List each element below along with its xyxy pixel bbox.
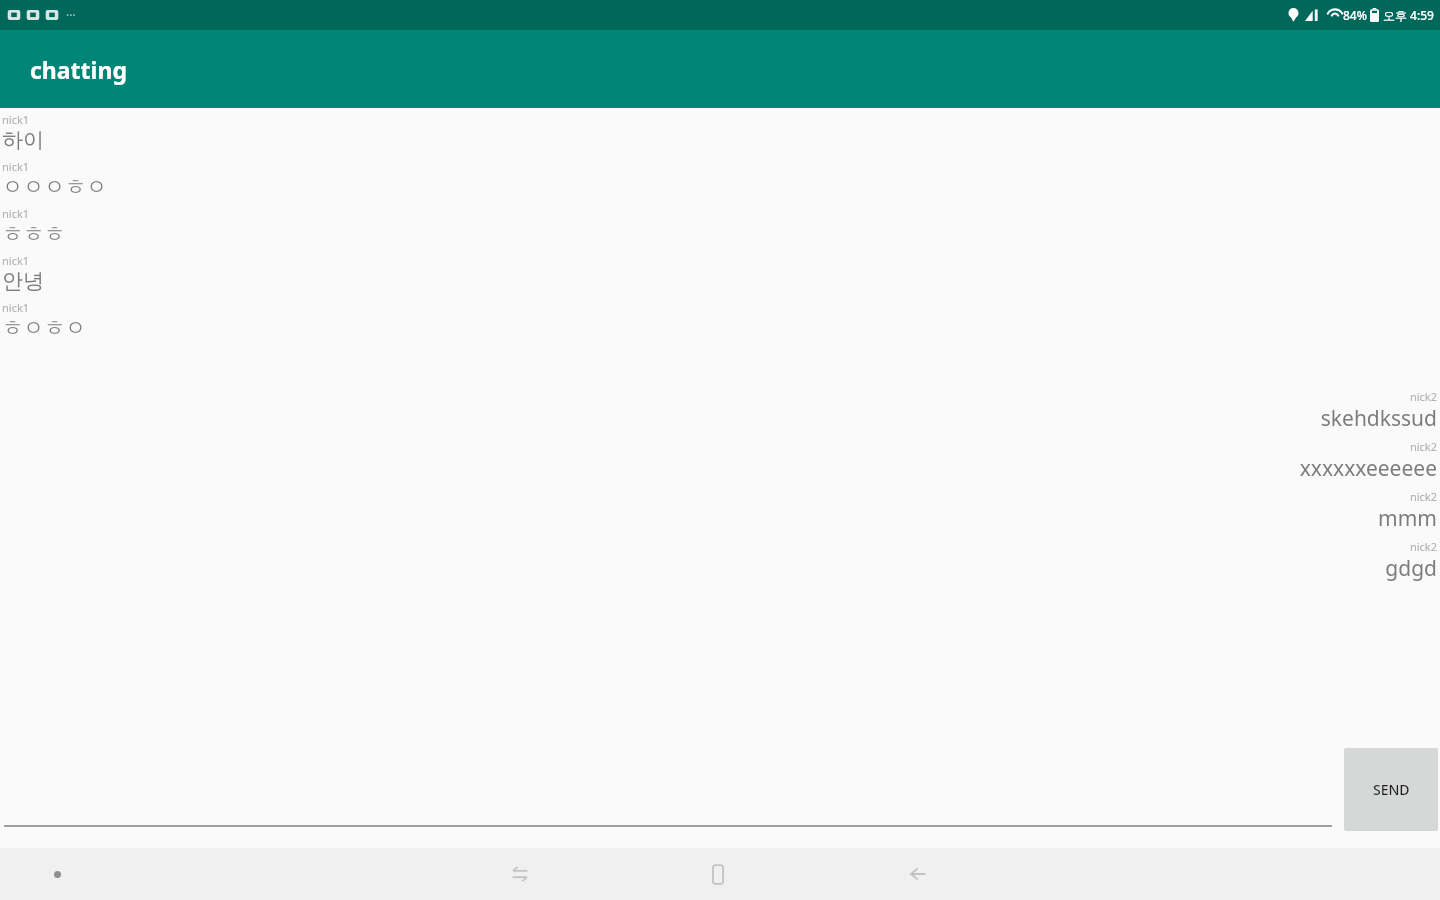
button[interactable]: ㅎㅎㅎ	[0, 221, 1440, 247]
button[interactable]: Home	[692, 848, 744, 900]
button[interactable]: mmm	[0, 504, 1440, 533]
button[interactable]: ㅎㅇㅎㅇ	[0, 315, 1440, 341]
staticText: 84%	[1343, 7, 1367, 23]
staticText: 오후 4:59	[1383, 7, 1434, 23]
staticText: ···	[66, 7, 76, 23]
button[interactable]: nick1	[0, 112, 1440, 127]
button[interactable]: 안녕	[0, 268, 1440, 294]
button[interactable]: nick2	[0, 439, 1440, 454]
button[interactable]: ㅇㅇㅇㅎㅇ	[0, 174, 1440, 200]
button[interactable]: skehdkssud	[0, 404, 1440, 433]
button[interactable]: gdgd	[0, 554, 1440, 583]
staticText: SEND	[1373, 780, 1410, 799]
button[interactable]: 하이	[0, 127, 1440, 153]
button[interactable]: nick1	[0, 300, 1440, 315]
button[interactable]: Recents	[494, 848, 546, 900]
button[interactable]: Back	[891, 848, 943, 900]
button[interactable]: Keyboard	[31, 848, 83, 900]
button[interactable]: nick1	[0, 253, 1440, 268]
button[interactable]: nick1	[0, 206, 1440, 221]
button[interactable]: nick2	[0, 389, 1440, 404]
button[interactable]: xxxxxxeeeeee	[0, 454, 1440, 483]
button[interactable]: nick2	[0, 539, 1440, 554]
button[interactable]: SEND	[1344, 748, 1438, 831]
button[interactable]: nick1	[0, 159, 1440, 174]
staticText: chatting	[30, 54, 127, 85]
button[interactable]: nick2	[0, 489, 1440, 504]
